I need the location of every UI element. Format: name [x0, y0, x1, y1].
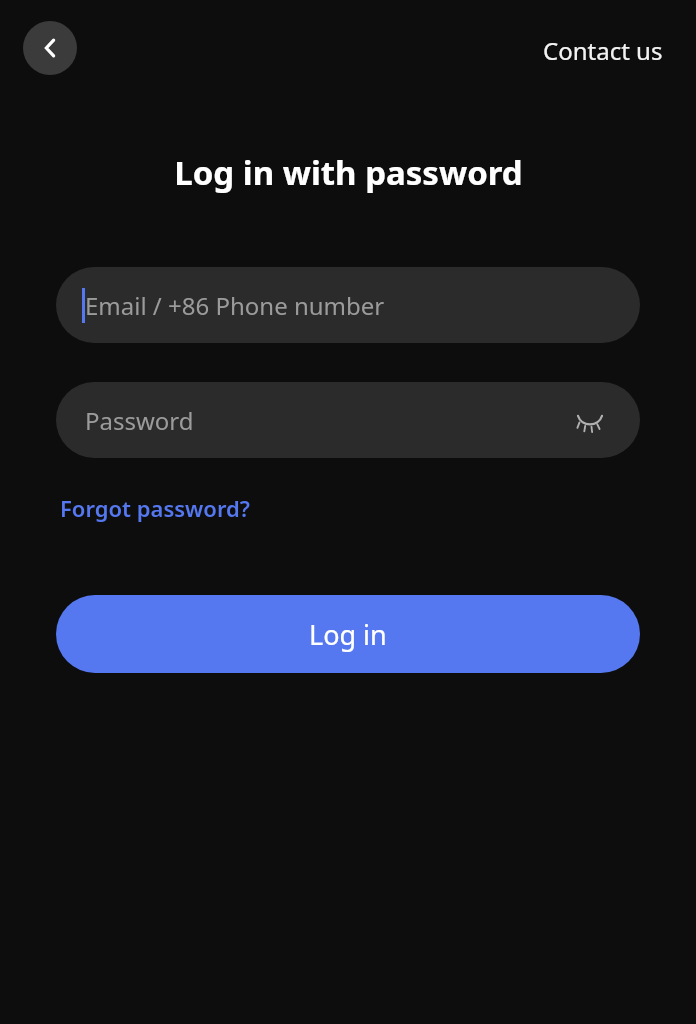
- staticText: Log in: [309, 616, 387, 653]
- staticText: Email / +86 Phone number: [85, 289, 385, 322]
- staticText: Log in with password: [174, 150, 523, 195]
- staticText: Contact us: [543, 34, 663, 67]
- button[interactable]: Back: [23, 21, 77, 75]
- button[interactable]: Show password: [564, 394, 616, 446]
- staticText: Forgot password?: [60, 493, 250, 523]
- button[interactable]: Log in: [56, 595, 640, 673]
- button[interactable]: Email / +86 Phone number: [56, 267, 640, 343]
- button[interactable]: Forgot password?: [52, 487, 258, 529]
- button[interactable]: Password: [56, 382, 640, 458]
- staticText: Password: [85, 404, 194, 437]
- button[interactable]: Contact us: [523, 24, 683, 77]
